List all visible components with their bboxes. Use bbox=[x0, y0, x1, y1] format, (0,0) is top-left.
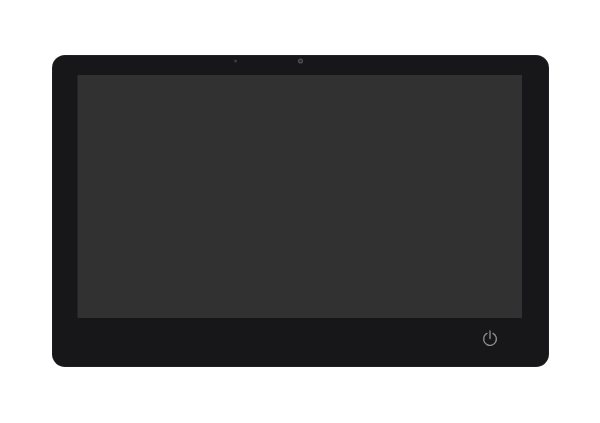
button[interactable]: Power bbox=[474, 323, 506, 355]
